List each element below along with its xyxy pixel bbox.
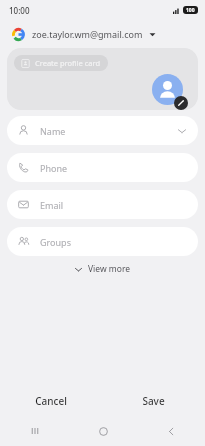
staticText: View more [88,263,131,275]
button[interactable]: Email [7,190,198,219]
button[interactable]: Groups [7,227,198,256]
button[interactable]: Edit photo [152,74,188,110]
staticText: zoe.taylor.wm@gmail.com [32,28,143,40]
staticText: Save [142,394,165,408]
staticText: Groups [40,236,71,248]
staticText: Name [40,125,66,137]
button[interactable]: Recent apps [0,416,69,446]
button[interactable]: Save [102,386,205,416]
button[interactable]: View more [0,256,205,282]
staticText: 10:00 [9,5,30,16]
button[interactable]: Cancel [0,386,102,416]
button[interactable]: Create profile card [14,55,108,71]
button[interactable]: zoe.taylor.wm@gmail.com [0,20,205,48]
button[interactable]: Home [69,416,137,446]
staticText: 100 [186,7,195,14]
staticText: Create profile card [35,58,101,68]
staticText: Cancel [35,394,67,408]
button[interactable]: Name [7,116,198,145]
staticText: Phone [40,162,68,174]
button[interactable]: Phone [7,153,198,182]
button[interactable]: Back [137,416,205,446]
staticText: Email [40,199,64,211]
